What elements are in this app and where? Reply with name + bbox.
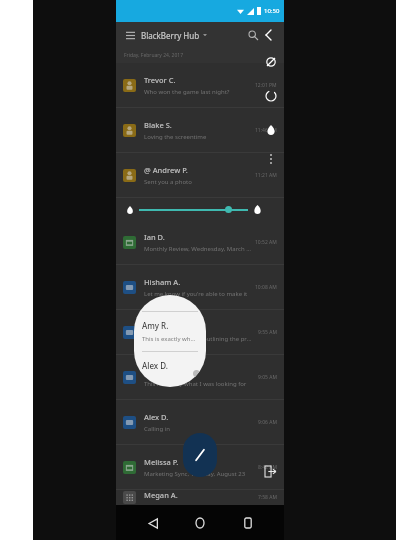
staticText: Ian D.	[144, 232, 165, 242]
staticText: Megan A.	[144, 490, 178, 500]
staticText: Let me know if you're able to make it	[144, 290, 248, 298]
button[interactable]: Alex D.	[116, 400, 284, 445]
button[interactable]: Melissa P.	[116, 445, 284, 490]
button[interactable]: Rotate	[263, 88, 279, 104]
button[interactable]: @ Andrew P.	[116, 153, 284, 198]
button[interactable]: Compose	[183, 433, 217, 477]
staticText: 7:58 AM	[258, 494, 277, 501]
button[interactable]: Amy R.	[134, 295, 206, 387]
button[interactable]: Hisham A.	[116, 265, 284, 310]
staticText: 11:21 AM	[255, 172, 277, 179]
staticText: 8:42 AM	[258, 464, 277, 471]
staticText: 10:52 AM	[255, 239, 277, 246]
button[interactable]: Recents	[237, 512, 259, 534]
button[interactable]: Back	[142, 512, 164, 534]
button[interactable]: Blake S.	[116, 108, 284, 153]
staticText: 9:06 AM	[258, 419, 277, 426]
button[interactable]: Search	[245, 27, 261, 43]
staticText: Marketing Sync, Tuesday, August 23	[144, 470, 246, 478]
staticText: Hisham A.	[144, 277, 181, 287]
staticText: Monthly Review, Wednesday, March 22 2017	[144, 245, 251, 253]
staticText: Sent you a photo	[144, 178, 192, 186]
button[interactable]: Ian D.	[116, 220, 284, 265]
staticText: Paul T.	[144, 322, 168, 332]
staticText: Melissa P.	[144, 457, 179, 467]
staticText: This is exactly what I was looking for	[144, 380, 247, 388]
staticText: Trevor C.	[144, 75, 176, 85]
staticText: 12:01 PM	[255, 82, 277, 89]
button[interactable]: Back	[261, 27, 277, 43]
button[interactable]: Brightness slider	[116, 198, 284, 220]
button[interactable]: Megan A.	[116, 490, 284, 505]
button[interactable]: Paul T.	[116, 310, 284, 355]
staticText: Blake S.	[144, 120, 172, 130]
staticText: 10:50	[264, 7, 280, 15]
staticText: 10:08 AM	[255, 284, 277, 291]
button[interactable]: Amy R.	[116, 355, 284, 400]
button[interactable]: Mute	[263, 54, 279, 70]
button[interactable]: Sign out	[262, 463, 278, 479]
button[interactable]: Menu	[123, 28, 137, 42]
button[interactable]: Trevor C.	[116, 63, 284, 108]
staticText: Alex D.	[142, 360, 168, 371]
staticText: Alex D.	[144, 412, 169, 422]
button[interactable]: Home	[189, 512, 211, 534]
staticText: 9:05 AM	[258, 374, 277, 381]
staticText: This is exactly what I was looking for	[142, 335, 198, 343]
staticText: 9:55 AM	[258, 329, 277, 336]
staticText: Amy R.	[142, 320, 169, 331]
staticText: Friday, February 24, 2017	[124, 52, 183, 59]
staticText: Who won the game last night?	[144, 88, 230, 96]
staticText: 11:46 AM	[255, 127, 277, 134]
staticText: BlackBerry Hub	[141, 30, 200, 41]
button[interactable]: More options	[264, 152, 278, 166]
staticText: Amy R.	[144, 367, 169, 377]
staticText: Here is a great piece outlining the prog…	[144, 335, 254, 343]
staticText: Loving the screentime	[144, 133, 207, 141]
button[interactable]: Brightness	[263, 122, 279, 138]
staticText: Calling in	[144, 425, 171, 433]
staticText: @ Andrew P.	[144, 165, 188, 175]
